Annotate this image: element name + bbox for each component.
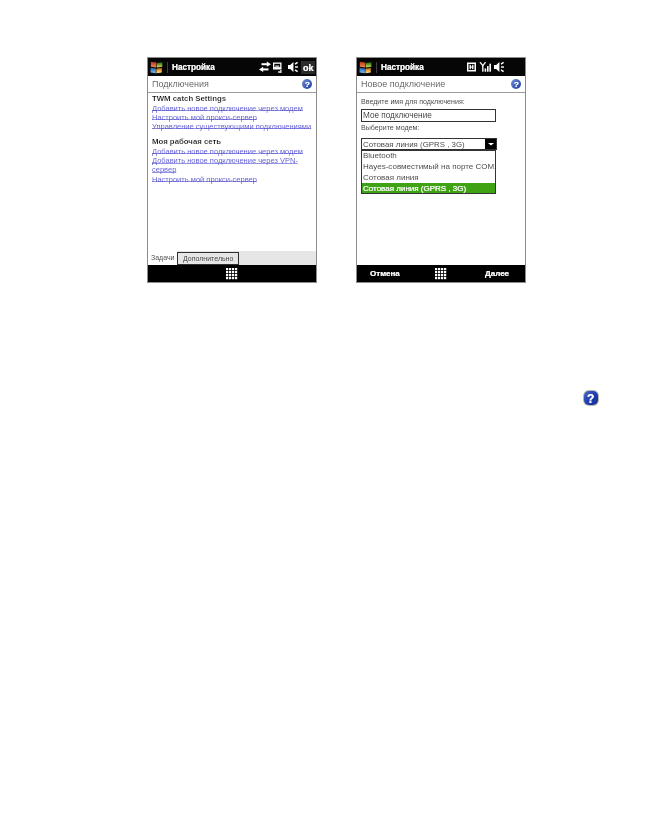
other: Status icons	[259, 61, 299, 73]
button[interactable]: Добавить новое подключение через модем	[152, 104, 303, 112]
button[interactable]: Сотовая линия (GPRS , 3G)	[361, 183, 496, 194]
staticText: Bluetooth	[363, 151, 397, 160]
staticText: Сотовая линия	[363, 173, 419, 182]
staticText: Моя рабочая сеть	[152, 137, 222, 146]
other: Open list	[485, 138, 497, 150]
staticText: Сотовая линия (GPRS , 3G)	[363, 184, 467, 193]
staticText: ?	[305, 80, 310, 89]
staticText: Hayes-совместимый на порте COM1	[363, 162, 496, 171]
button[interactable]: Дополнительно	[177, 252, 239, 265]
other: Status icons	[467, 61, 506, 73]
button[interactable]: Help	[302, 79, 312, 89]
button[interactable]: Help	[511, 79, 521, 89]
button[interactable]: Сотовая линия	[361, 172, 496, 183]
button[interactable]: Настроить мой прокси-сервер	[152, 113, 257, 121]
staticText: Выберите модем:	[361, 124, 420, 132]
staticText: Мое подключение	[363, 111, 432, 120]
button[interactable]: Задачи	[148, 251, 177, 265]
button[interactable]: ok	[301, 61, 315, 74]
staticText: Далее	[485, 269, 510, 278]
button[interactable]: Настроить мой прокси-сервер	[152, 175, 257, 183]
staticText: Настройка	[381, 63, 424, 72]
staticText: Сотовая линия (GPRS , 3G)	[363, 140, 485, 149]
button[interactable]: Show keyboard	[226, 268, 238, 280]
button[interactable]: Show keyboard	[413, 265, 469, 282]
staticText: Новое подключение	[361, 79, 446, 89]
staticText: ?	[514, 80, 519, 89]
staticText: Отмена	[370, 269, 400, 278]
staticText: ?	[587, 392, 595, 405]
other: Show keyboard	[435, 268, 447, 280]
button[interactable]: Сотовая линия (GPRS , 3G)	[361, 138, 497, 150]
button[interactable]: Help	[584, 391, 598, 405]
staticText: Настройка	[172, 63, 215, 72]
button[interactable]: Управление существующими подключениями	[152, 122, 312, 130]
staticText: TWM catch Settings	[152, 94, 227, 103]
staticText: Дополнительно	[183, 255, 234, 263]
staticText: Задачи	[151, 254, 175, 262]
staticText: Подключения	[152, 79, 209, 89]
staticText: ok	[303, 63, 314, 73]
button[interactable]: Далее	[469, 265, 525, 282]
button[interactable]: Bluetooth	[361, 150, 496, 161]
other: Show keyboard	[226, 268, 238, 280]
button[interactable]: Добавить новое подключение через VPN-сер…	[152, 156, 316, 174]
button[interactable]: Отмена	[357, 265, 413, 282]
button[interactable]: Мое подключение	[361, 109, 496, 122]
button[interactable]: Hayes-совместимый на порте COM1	[361, 161, 496, 172]
staticText: Введите имя для подключения:	[361, 98, 465, 106]
button[interactable]: Добавить новое подключение через модем	[152, 147, 303, 155]
